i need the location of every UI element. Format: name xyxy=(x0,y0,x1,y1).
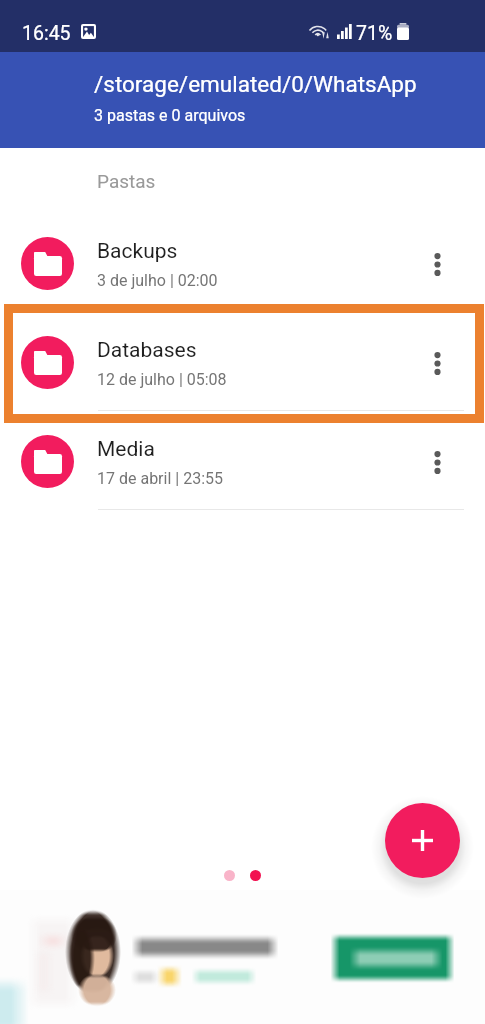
button[interactable]: Page 1 xyxy=(224,870,235,881)
button[interactable]: Page 2 xyxy=(250,870,261,881)
button[interactable]: Advertisement xyxy=(0,890,485,1024)
button[interactable]: Add new folder xyxy=(385,803,460,878)
staticText: Databases xyxy=(97,338,197,363)
button[interactable]: More options xyxy=(418,243,456,285)
staticText: 71% xyxy=(356,22,393,45)
staticText: 3 pastas e 0 arquivos xyxy=(94,106,246,125)
button[interactable]: More options xyxy=(418,342,456,384)
button[interactable]: Backups xyxy=(0,214,485,312)
staticText: 3 de julho | 02:00 xyxy=(97,271,218,290)
button[interactable]: Databases xyxy=(0,313,485,411)
staticText: 17 de abril | 23:55 xyxy=(97,469,224,488)
staticText: Backups xyxy=(97,239,178,264)
staticText: Pastas xyxy=(97,170,156,192)
staticText: 12 de julho | 05:08 xyxy=(97,370,227,389)
staticText: Media xyxy=(97,437,155,462)
staticText: 16:45 xyxy=(22,22,71,45)
button[interactable]: Media xyxy=(0,412,485,510)
button[interactable]: More options xyxy=(418,441,456,483)
staticText: /storage/emulated/0/WhatsApp xyxy=(94,71,417,97)
